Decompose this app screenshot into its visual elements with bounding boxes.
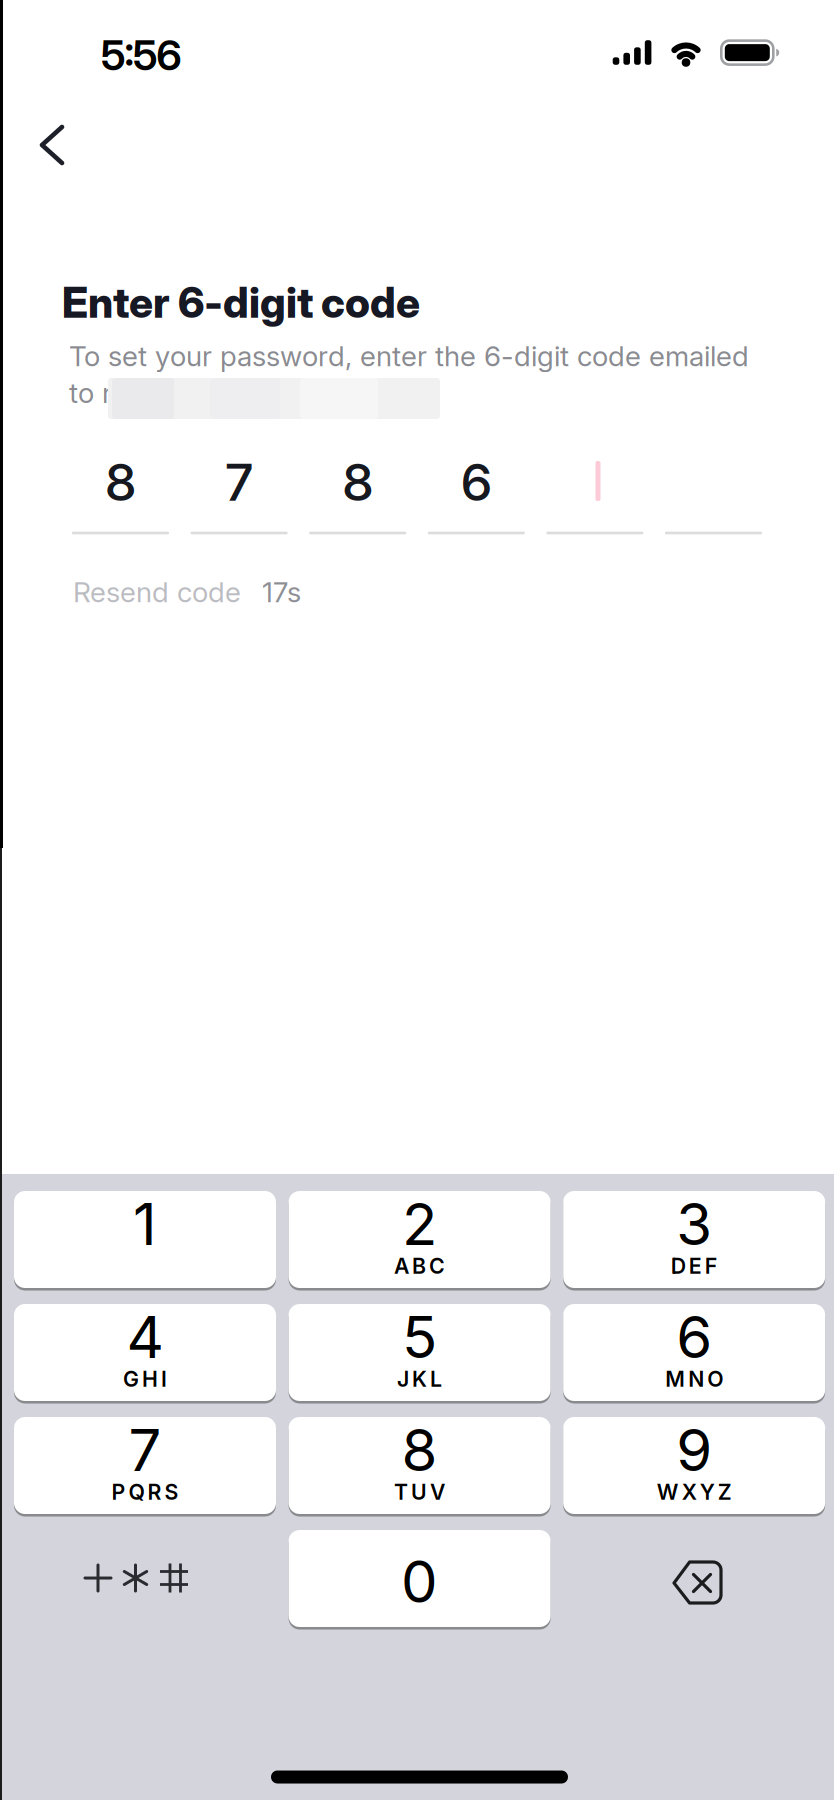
button[interactable]: 8 bbox=[289, 1415, 551, 1515]
staticText: 4 bbox=[126, 1302, 163, 1372]
staticText: 5 bbox=[402, 1302, 437, 1372]
staticText: 6 bbox=[460, 451, 492, 513]
button[interactable]: 7 bbox=[14, 1415, 276, 1515]
staticText: 0 bbox=[401, 1546, 438, 1617]
staticText: JKL bbox=[397, 1366, 442, 1392]
staticText: TUV bbox=[394, 1479, 445, 1505]
staticText: To set your password, enter the 6-digit … bbox=[69, 339, 749, 410]
button[interactable]: 6 bbox=[563, 1302, 825, 1402]
staticText: GHI bbox=[123, 1366, 167, 1392]
staticText: 7 bbox=[225, 451, 254, 513]
staticText: Enter 6-digit code bbox=[62, 277, 420, 328]
button[interactable]: Delete bbox=[563, 1528, 825, 1628]
staticText: MNO bbox=[665, 1366, 723, 1392]
staticText: 3 bbox=[676, 1189, 712, 1259]
button[interactable]: Back bbox=[30, 123, 74, 167]
button[interactable]: More symbols bbox=[14, 1528, 276, 1628]
button[interactable]: 9 bbox=[563, 1415, 825, 1515]
staticText: 1 bbox=[133, 1189, 157, 1259]
staticText: 2 bbox=[402, 1189, 437, 1259]
button[interactable]: 3 bbox=[563, 1189, 825, 1289]
button[interactable]: 0 bbox=[289, 1528, 551, 1628]
staticText: 6 bbox=[676, 1302, 712, 1372]
button[interactable]: 1 bbox=[14, 1189, 276, 1289]
staticText: DEF bbox=[671, 1253, 718, 1279]
button[interactable]: 4 bbox=[14, 1302, 276, 1402]
staticText: 5:56 bbox=[101, 30, 181, 80]
button[interactable]: 2 bbox=[289, 1189, 551, 1289]
staticText: 8 bbox=[402, 1415, 438, 1485]
staticText: 8 bbox=[342, 451, 374, 513]
staticText: 17s bbox=[262, 575, 301, 609]
button[interactable]: 5 bbox=[289, 1302, 551, 1402]
staticText: WXYZ bbox=[657, 1479, 732, 1505]
staticText: 8 bbox=[104, 451, 136, 513]
staticText: PQRS bbox=[111, 1479, 178, 1505]
button[interactable]: Resend code bbox=[73, 575, 473, 609]
staticText: Resend code bbox=[73, 575, 241, 609]
staticText: 9 bbox=[676, 1415, 712, 1485]
staticText: ABC bbox=[394, 1253, 445, 1279]
staticText: 7 bbox=[128, 1415, 161, 1485]
